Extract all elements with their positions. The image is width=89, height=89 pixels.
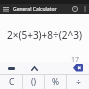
staticText: General Calculator <box>13 6 69 13</box>
button[interactable] <box>23 62 45 74</box>
button[interactable]: % <box>45 75 67 89</box>
button[interactable] <box>80 4 89 14</box>
staticText: 2×(5+3)+8÷(2^3) <box>7 28 82 42</box>
staticText: ÷ <box>76 76 81 88</box>
button[interactable]: C <box>0 75 23 89</box>
staticText: % <box>52 76 60 88</box>
button[interactable] <box>67 62 89 74</box>
button[interactable]: () <box>23 75 45 89</box>
button[interactable] <box>0 62 23 74</box>
staticText: 17 <box>71 55 80 62</box>
staticText: C <box>9 76 15 88</box>
button[interactable] <box>0 4 12 14</box>
button[interactable]: ÷ <box>67 75 89 89</box>
staticText: () <box>31 76 37 88</box>
button[interactable] <box>69 4 80 14</box>
